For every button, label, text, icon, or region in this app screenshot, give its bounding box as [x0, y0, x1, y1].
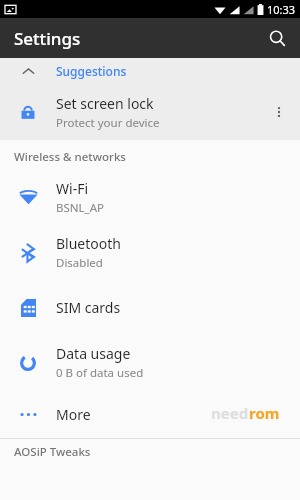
staticText: Wi-Fi	[56, 179, 89, 198]
button[interactable]: Data usage	[0, 335, 300, 390]
staticText: need	[211, 403, 249, 423]
staticText: Settings	[14, 27, 81, 50]
staticText: Disabled	[56, 255, 103, 271]
button[interactable]: Bluetooth	[0, 225, 300, 280]
staticText: More	[56, 405, 91, 424]
staticText: SIM cards	[56, 298, 121, 317]
staticText: 10:33	[267, 2, 296, 17]
button[interactable]: Suggestions	[0, 58, 300, 84]
staticText: rom	[249, 403, 280, 423]
button[interactable]: Set screen lock	[0, 84, 300, 140]
staticText: Suggestions	[56, 63, 127, 79]
staticText: 0 B of data used	[56, 365, 144, 381]
staticText: BSNL_AP	[56, 200, 104, 216]
staticText: AOSiP Tweaks	[14, 444, 91, 460]
staticText: Wireless & networks	[14, 149, 126, 165]
button[interactable]: More options	[264, 94, 294, 130]
staticText: Data usage	[56, 344, 131, 363]
button[interactable]: Wi-Fi	[0, 170, 300, 225]
button[interactable]: SIM cards	[0, 280, 300, 335]
staticText: Set screen lock	[56, 94, 154, 113]
staticText: Protect your device	[56, 115, 160, 131]
staticText: Bluetooth	[56, 234, 121, 253]
button[interactable]: Search	[260, 21, 294, 55]
button[interactable]: More	[0, 390, 300, 438]
